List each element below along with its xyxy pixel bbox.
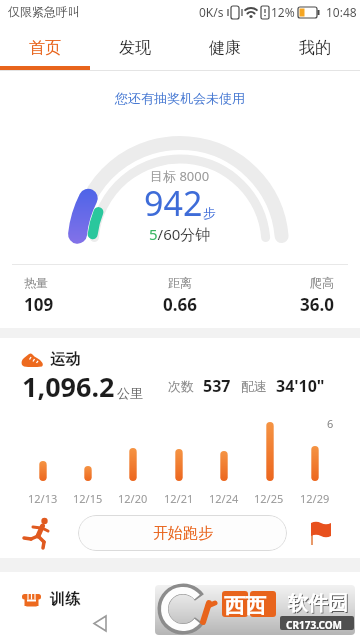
staticText: 6 <box>327 416 334 431</box>
staticText: 34'10" <box>276 375 325 397</box>
button[interactable] <box>305 514 339 552</box>
staticText: 10:48 <box>326 4 357 20</box>
staticText: 健康 <box>209 38 241 58</box>
staticText: 5/60分钟 <box>149 224 211 244</box>
staticText: 537 <box>203 375 231 397</box>
staticText: 12/25 <box>254 491 284 506</box>
staticText: CR173.COM <box>286 618 343 632</box>
staticText: 步 <box>203 205 216 221</box>
staticText: 12/24 <box>209 491 239 506</box>
staticText: 1,096.2 <box>22 368 115 405</box>
staticText: 12/13 <box>28 491 58 506</box>
staticText: 12/15 <box>73 491 103 506</box>
button[interactable] <box>80 600 120 640</box>
staticText: 公里 <box>117 385 143 401</box>
staticText: 热量 <box>24 275 48 290</box>
staticText: 首页 <box>29 38 61 58</box>
staticText: 软件园 <box>289 592 349 617</box>
staticText: 942 <box>144 180 203 226</box>
staticText: 开始跑步 <box>153 524 213 543</box>
staticText: 12% <box>271 4 295 20</box>
staticText: 软件园 <box>288 591 348 616</box>
button[interactable]: 发现 <box>90 25 180 70</box>
staticText: 12/20 <box>118 491 148 506</box>
staticText: 运动 <box>50 350 80 369</box>
staticText: 爬高 <box>310 275 334 290</box>
staticText: 36.0 <box>300 293 334 316</box>
staticText: 12/29 <box>300 491 330 506</box>
staticText: 我的 <box>299 38 331 58</box>
staticText: 12/21 <box>164 491 194 506</box>
staticText: 发现 <box>119 38 151 58</box>
staticText: 训练 <box>50 590 80 609</box>
button[interactable]: 开始跑步 <box>78 515 287 551</box>
staticText: 次数 <box>168 378 194 394</box>
staticText: 配速 <box>241 378 267 394</box>
button[interactable]: 我的 <box>270 25 360 70</box>
staticText: 109 <box>24 293 54 316</box>
button[interactable] <box>0 338 360 400</box>
staticText: 目标 8000 <box>150 167 210 185</box>
button[interactable] <box>0 570 360 600</box>
staticText: 距离 <box>168 275 192 290</box>
staticText: 0K/s <box>199 4 224 20</box>
staticText: 您还有抽奖机会未使用 <box>115 90 245 106</box>
staticText: 西西 <box>224 593 266 619</box>
button[interactable]: 您还有抽奖机会未使用 <box>115 90 245 106</box>
button[interactable] <box>22 514 56 552</box>
button[interactable]: 首页 <box>0 25 90 70</box>
button[interactable]: 健康 <box>180 25 270 70</box>
staticText: 仅限紧急呼叫 <box>8 4 80 19</box>
staticText: 0.66 <box>163 293 197 316</box>
